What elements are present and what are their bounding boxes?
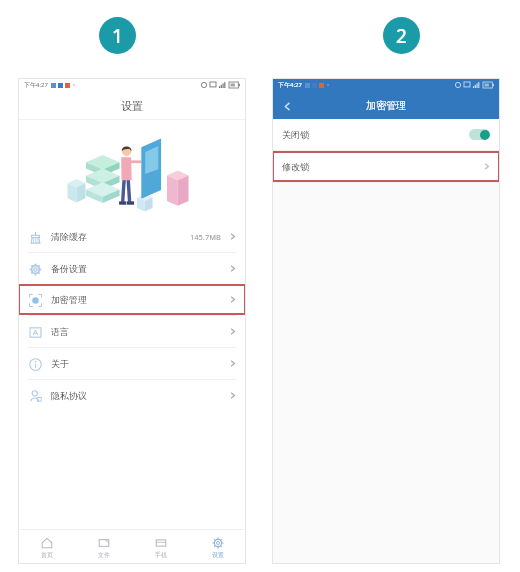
staticText: 1 [112,23,123,49]
staticText: 2 [396,23,407,49]
staticText: 语言 [51,326,69,337]
button[interactable]: 关闭锁 [272,119,500,150]
button[interactable]: Back [278,97,296,115]
staticText: 设置 [212,551,224,559]
staticText: 加密管理 [51,294,87,305]
staticText: 下午4:27 [278,81,302,89]
button[interactable]: 关于 [18,348,246,379]
button[interactable]: Lock toggle [469,129,490,140]
button[interactable]: 首页 [18,530,75,564]
staticText: 关闭锁 [282,129,309,140]
staticText: 145.7MB [190,232,221,242]
staticText: 备份设置 [51,263,87,274]
button[interactable]: 隐私协议 [18,380,246,411]
staticText: 隐私协议 [51,390,87,401]
button[interactable]: 修改锁 [272,151,500,182]
staticText: 加密管理 [366,99,406,112]
button[interactable]: 语言 [18,316,246,347]
button[interactable]: 手机 [132,530,189,564]
button[interactable]: 备份设置 [18,253,246,284]
staticText: 清除缓存 [51,231,87,242]
staticText: 修改锁 [282,161,309,172]
button[interactable]: 加密管理 [18,284,246,315]
staticText: 手机 [155,551,167,559]
button[interactable]: 文件 [75,530,132,564]
staticText: 首页 [41,551,53,559]
staticText: 设置 [121,99,143,113]
staticText: 下午4:27 [24,81,48,89]
button[interactable]: 设置 [189,530,246,564]
button[interactable]: 清除缓存 [18,221,246,252]
staticText: 文件 [98,551,110,559]
staticText: 关于 [51,358,69,369]
